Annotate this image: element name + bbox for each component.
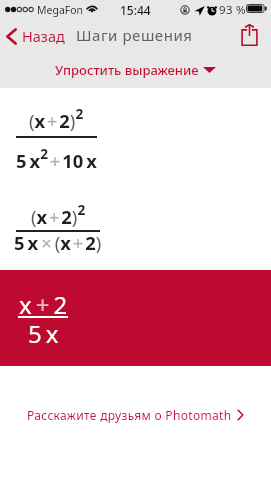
staticText: x + 2	[19, 288, 68, 321]
staticText: 5 x	[28, 317, 59, 350]
button[interactable]: Упростить выражение	[49, 60, 222, 88]
button[interactable]: Назад	[0, 22, 73, 51]
staticText: 5 x2 + 10 x	[16, 144, 97, 174]
staticText: Расскажите друзьям о Photomath	[27, 407, 232, 423]
staticText: 15:44	[120, 2, 151, 18]
staticText: Упростить выражение	[55, 61, 199, 79]
staticText: Шаги решения	[76, 25, 193, 45]
staticText: (x + 2)2	[29, 104, 84, 134]
button[interactable]: Поделиться	[235, 17, 265, 51]
staticText: (x + 2)2	[31, 200, 86, 230]
staticText: 5 x × (x + 2)	[14, 230, 102, 255]
staticText: MegaFon	[37, 3, 84, 17]
button[interactable]: Расскажите друзьям о Photomath	[21, 402, 250, 428]
staticText: Назад	[22, 26, 65, 46]
staticText: 93 %	[219, 2, 246, 18]
